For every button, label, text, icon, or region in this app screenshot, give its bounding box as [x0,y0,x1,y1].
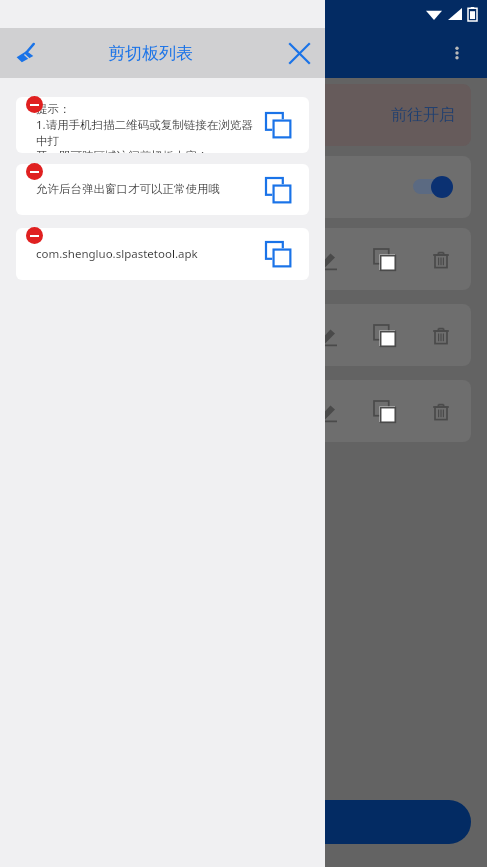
button[interactable] [0,800,471,844]
staticText: 允许后台弹出窗口才可以正常使用哦 [36,182,220,196]
button[interactable]: Delete [26,96,43,113]
button[interactable] [0,380,471,442]
button[interactable] [0,228,471,290]
button[interactable]: Clean [8,35,44,71]
staticText: 剪切板列表 [108,43,193,64]
button[interactable]: 允许后台弹出窗口才可以正常使用哦 [16,164,309,215]
button[interactable]: Delete [26,163,43,180]
button[interactable]: 前往开启 [0,84,471,146]
staticText: 提示： [36,102,71,116]
staticText: 前往开启 [391,105,455,125]
staticText: 开，即可跨区域访问剪切板内容！ [36,149,209,153]
button[interactable]: 提示： [16,97,309,153]
button[interactable]: More options [437,33,477,73]
button[interactable]: Close [281,35,317,71]
button[interactable] [0,304,471,366]
button[interactable]: Delete [26,227,43,244]
staticText: com.shengluo.slpastetool.apk [36,246,198,262]
button[interactable]: Copy [261,237,295,271]
button[interactable]: com.shengluo.slpastetool.apk [16,228,309,280]
button[interactable]: Copy [261,173,295,207]
button[interactable] [0,156,471,218]
staticText: 1.请用手机扫描二维码或复制链接在浏览器中打 [36,117,255,148]
button[interactable]: Copy [261,108,295,142]
